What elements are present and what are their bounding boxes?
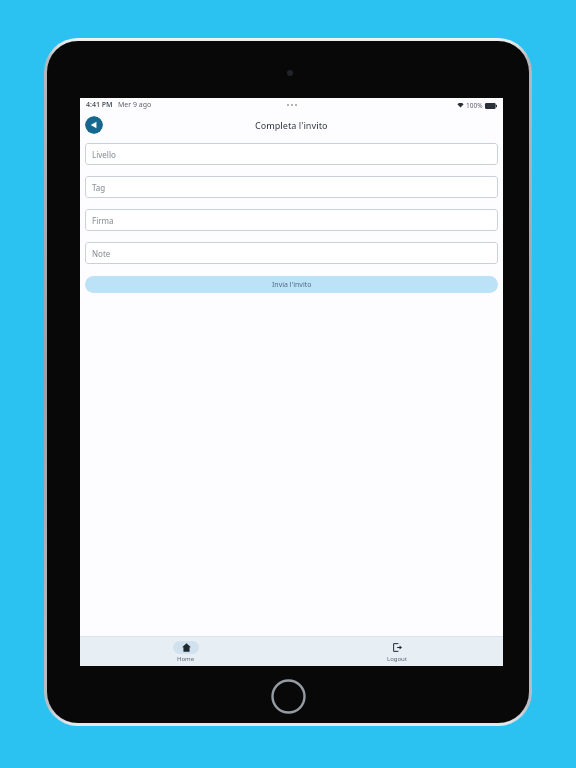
- button[interactable]: Invia l'invito: [85, 276, 498, 293]
- button[interactable]: Logout: [381, 639, 413, 665]
- button[interactable]: Indietro: [85, 116, 103, 134]
- staticText: Logout: [387, 655, 407, 663]
- staticText: Note: [92, 248, 111, 259]
- button[interactable]: Firma: [85, 209, 498, 231]
- staticText: Mer 9 ago: [118, 100, 152, 110]
- staticText: Invia l'invito: [272, 280, 312, 290]
- staticText: Livello: [92, 149, 116, 160]
- staticText: 100%: [466, 101, 483, 110]
- button[interactable]: Home: [170, 639, 202, 665]
- staticText: 4:41 PM: [86, 100, 113, 110]
- button[interactable]: Livello: [85, 143, 498, 165]
- button[interactable]: Note: [85, 242, 498, 264]
- staticText: Firma: [92, 215, 114, 226]
- staticText: Tag: [92, 182, 106, 193]
- button[interactable]: Tag: [85, 176, 498, 198]
- staticText: Completa l'invito: [255, 119, 328, 131]
- staticText: Home: [177, 655, 195, 663]
